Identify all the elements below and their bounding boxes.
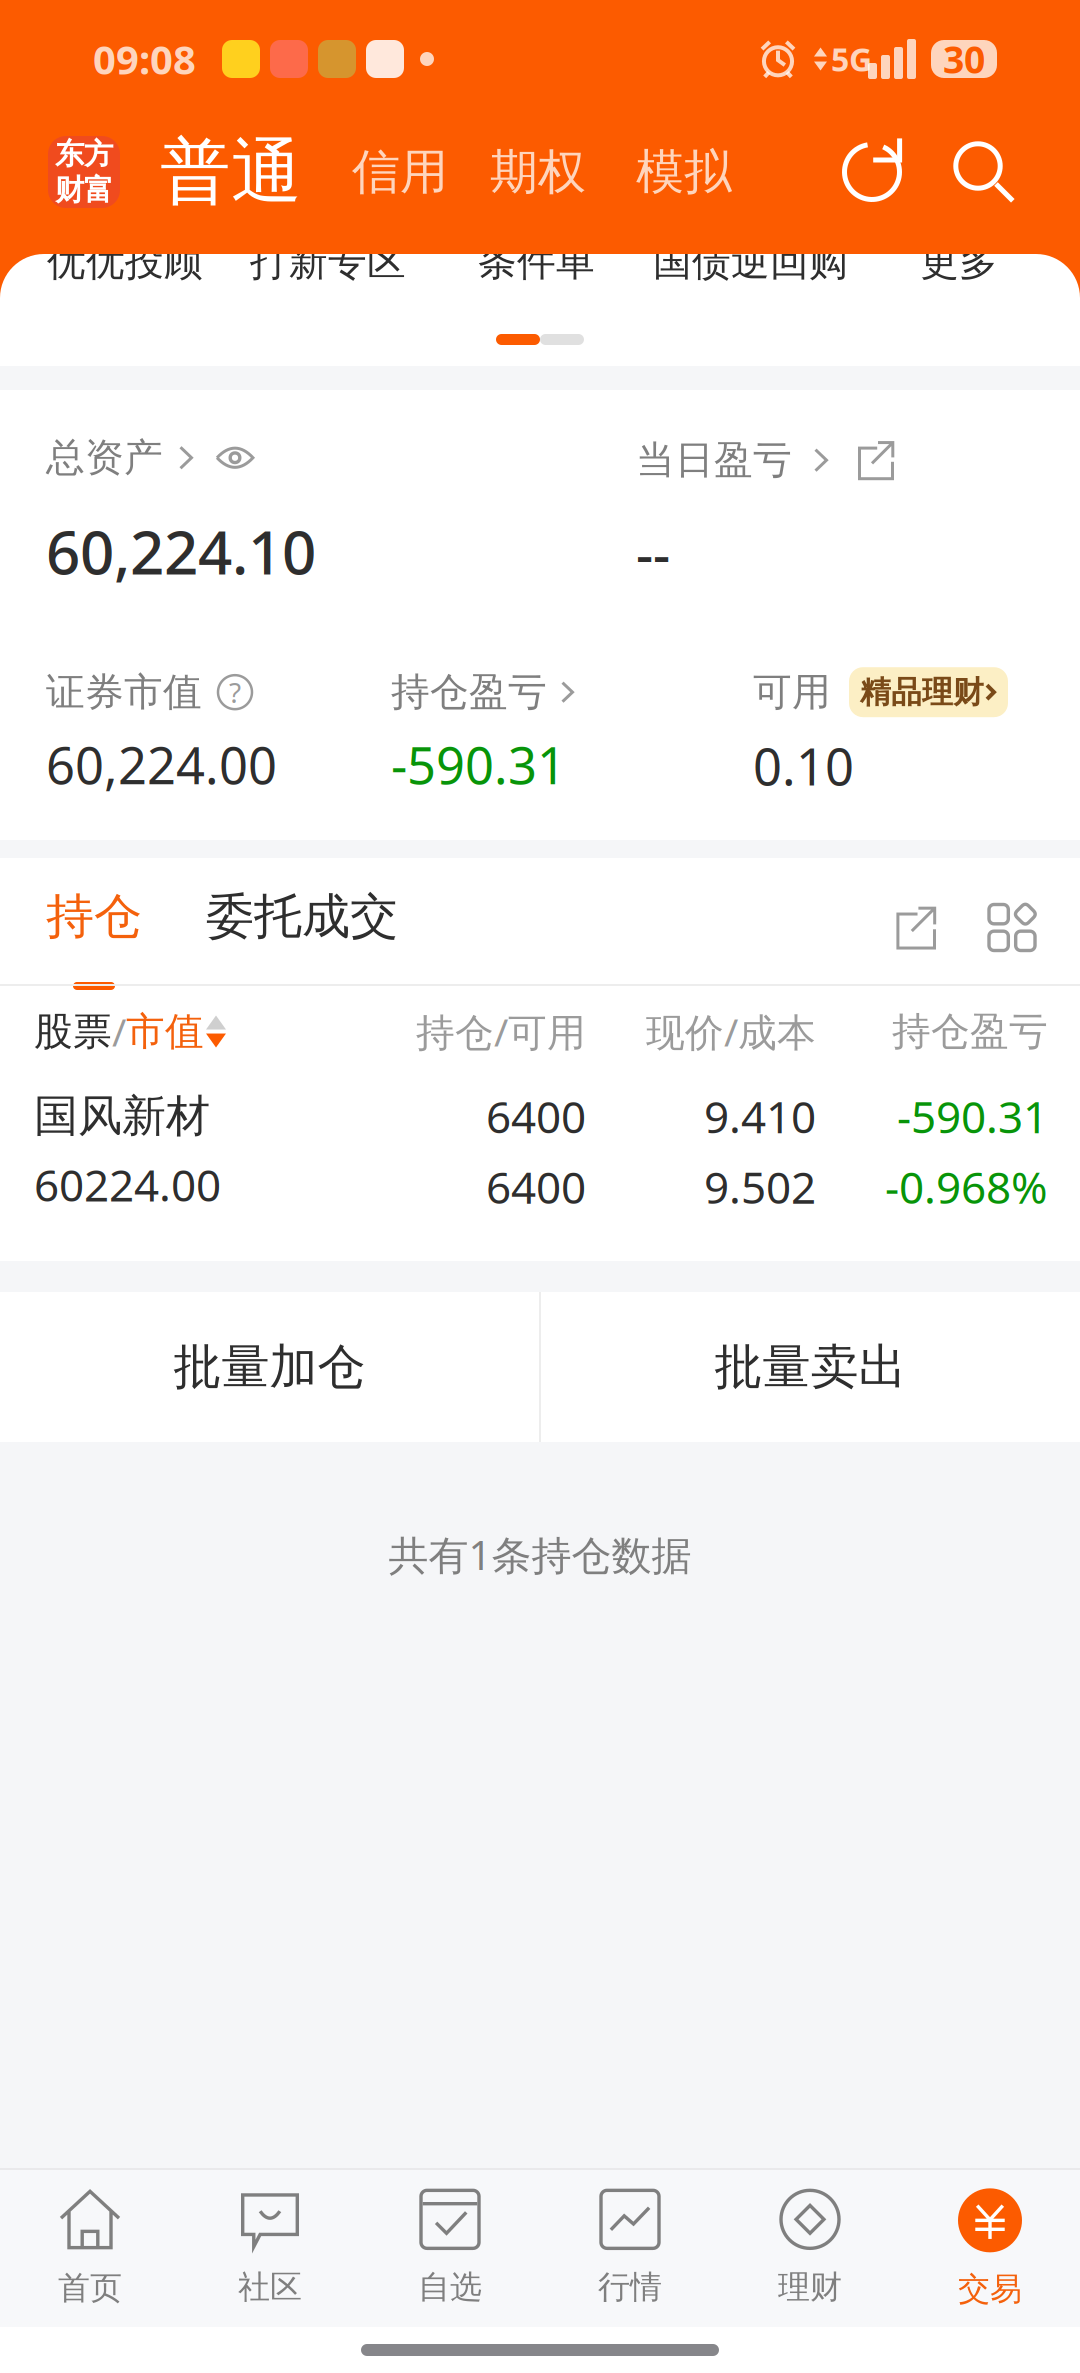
staticText: 9.410 [704, 1087, 816, 1145]
staticText: 更多 [920, 238, 998, 286]
button[interactable]: 精品理财 [849, 667, 1008, 717]
staticText: 普通 [160, 129, 302, 215]
staticText: 委托成交 [206, 887, 398, 946]
staticText: 持仓盈亏 [892, 1008, 1048, 1055]
staticText: -590.31 [391, 731, 566, 798]
button[interactable]: 批量卖出 [541, 1292, 1080, 1442]
staticText: 自选 [418, 2267, 482, 2307]
staticText: 60224.00 [34, 1155, 221, 1214]
staticText: 60,224.10 [46, 511, 316, 591]
staticText: 精品理财 [860, 673, 984, 711]
staticText: 总资产 [46, 434, 163, 481]
staticText: 09:08 [93, 32, 196, 85]
button[interactable]: 优优投顾 [0, 238, 203, 286]
button[interactable]: 总资产 [46, 434, 255, 481]
staticText: 证券市值 [46, 668, 202, 716]
button[interactable]: 国风新材 [0, 1064, 1080, 1216]
button[interactable]: 自选 [360, 2170, 540, 2327]
button[interactable]: 搜索 [946, 134, 1022, 210]
staticText: / [112, 1006, 126, 1057]
button[interactable]: 国债逆回购 [595, 238, 848, 286]
staticText: 股票 [34, 1008, 112, 1055]
button[interactable]: 持仓 [46, 887, 142, 990]
staticText: 5G [831, 38, 872, 80]
staticText: 交易 [958, 2269, 1022, 2309]
staticText: 0.10 [753, 732, 854, 799]
staticText: -0.968% [885, 1157, 1048, 1216]
staticText: 当日盈亏 [636, 436, 792, 484]
staticText: 国债逆回购 [653, 238, 848, 286]
staticText: 可用 [753, 668, 831, 716]
staticText: 持仓/可用 [416, 1006, 586, 1057]
staticText: 批量卖出 [714, 1337, 906, 1396]
staticText: 市值 [126, 1008, 204, 1055]
staticText: 共有1条持仓数据 [388, 1528, 691, 1581]
staticText: 批量加仓 [173, 1337, 365, 1396]
staticText: 60,224.00 [46, 731, 277, 798]
button[interactable]: 行情 [540, 2170, 720, 2327]
staticText: 条件单 [478, 238, 595, 286]
button[interactable]: 交易 [900, 2170, 1080, 2327]
button[interactable]: 委托成交 [206, 887, 398, 990]
staticText: 期权 [490, 142, 586, 201]
button[interactable]: 信用 [336, 142, 464, 201]
button[interactable]: 更多 [848, 238, 998, 286]
staticText: 国风新材 [34, 1089, 210, 1143]
button[interactable]: 条件单 [406, 238, 595, 286]
button[interactable]: 打新专区 [203, 238, 406, 286]
staticText: 持仓 [46, 887, 142, 946]
staticText: 30 [943, 34, 985, 84]
staticText: -590.31 [897, 1087, 1048, 1145]
staticText: 现价/成本 [646, 1006, 816, 1057]
button[interactable]: 持仓盈亏 [391, 668, 574, 716]
button[interactable]: 切换视图 [984, 899, 1040, 955]
button[interactable]: 模拟 [620, 142, 748, 201]
staticText: 首页 [58, 2268, 122, 2308]
staticText: 持仓盈亏 [391, 668, 547, 716]
staticText: 信用 [352, 142, 448, 201]
staticText: 社区 [238, 2267, 302, 2307]
staticText: 6400 [486, 1087, 586, 1145]
staticText: 东方 [55, 136, 113, 172]
button[interactable]: 首页 [0, 2170, 180, 2327]
button[interactable]: 分享 [886, 899, 942, 955]
staticText: ? [229, 674, 241, 711]
staticText: 优优投顾 [47, 238, 203, 286]
button[interactable]: 当日盈亏 [636, 436, 894, 484]
staticText: 打新专区 [250, 238, 406, 286]
staticText: 模拟 [636, 142, 732, 201]
button[interactable]: 普通 [148, 129, 314, 215]
staticText: -- [636, 518, 670, 589]
button[interactable]: 批量加仓 [0, 1292, 539, 1442]
button[interactable]: 社区 [180, 2170, 360, 2327]
staticText: 财富 [55, 172, 113, 208]
staticText: 行情 [598, 2267, 662, 2307]
button[interactable]: 理财 [720, 2170, 900, 2327]
button[interactable]: 期权 [474, 142, 602, 201]
button[interactable]: 刷新 [834, 134, 910, 210]
staticText: 理财 [778, 2267, 842, 2307]
staticText: 6400 [486, 1157, 586, 1216]
staticText: 9.502 [704, 1157, 816, 1216]
